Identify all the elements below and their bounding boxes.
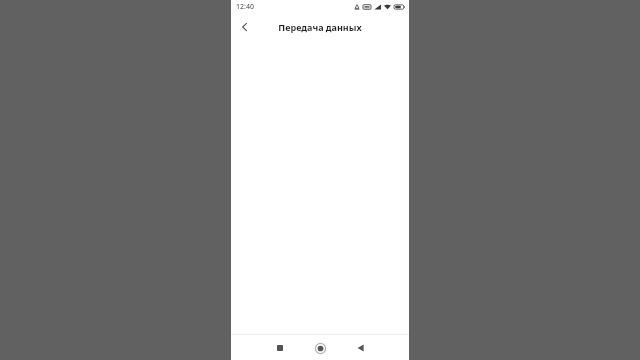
button[interactable]: Недавние приложения	[269, 337, 291, 359]
staticText: 12:40	[236, 2, 254, 12]
staticText: Передача данных	[278, 21, 362, 33]
button[interactable]: Назад	[236, 18, 254, 36]
button[interactable]: Главный экран	[309, 337, 331, 359]
button[interactable]: Назад	[349, 337, 371, 359]
